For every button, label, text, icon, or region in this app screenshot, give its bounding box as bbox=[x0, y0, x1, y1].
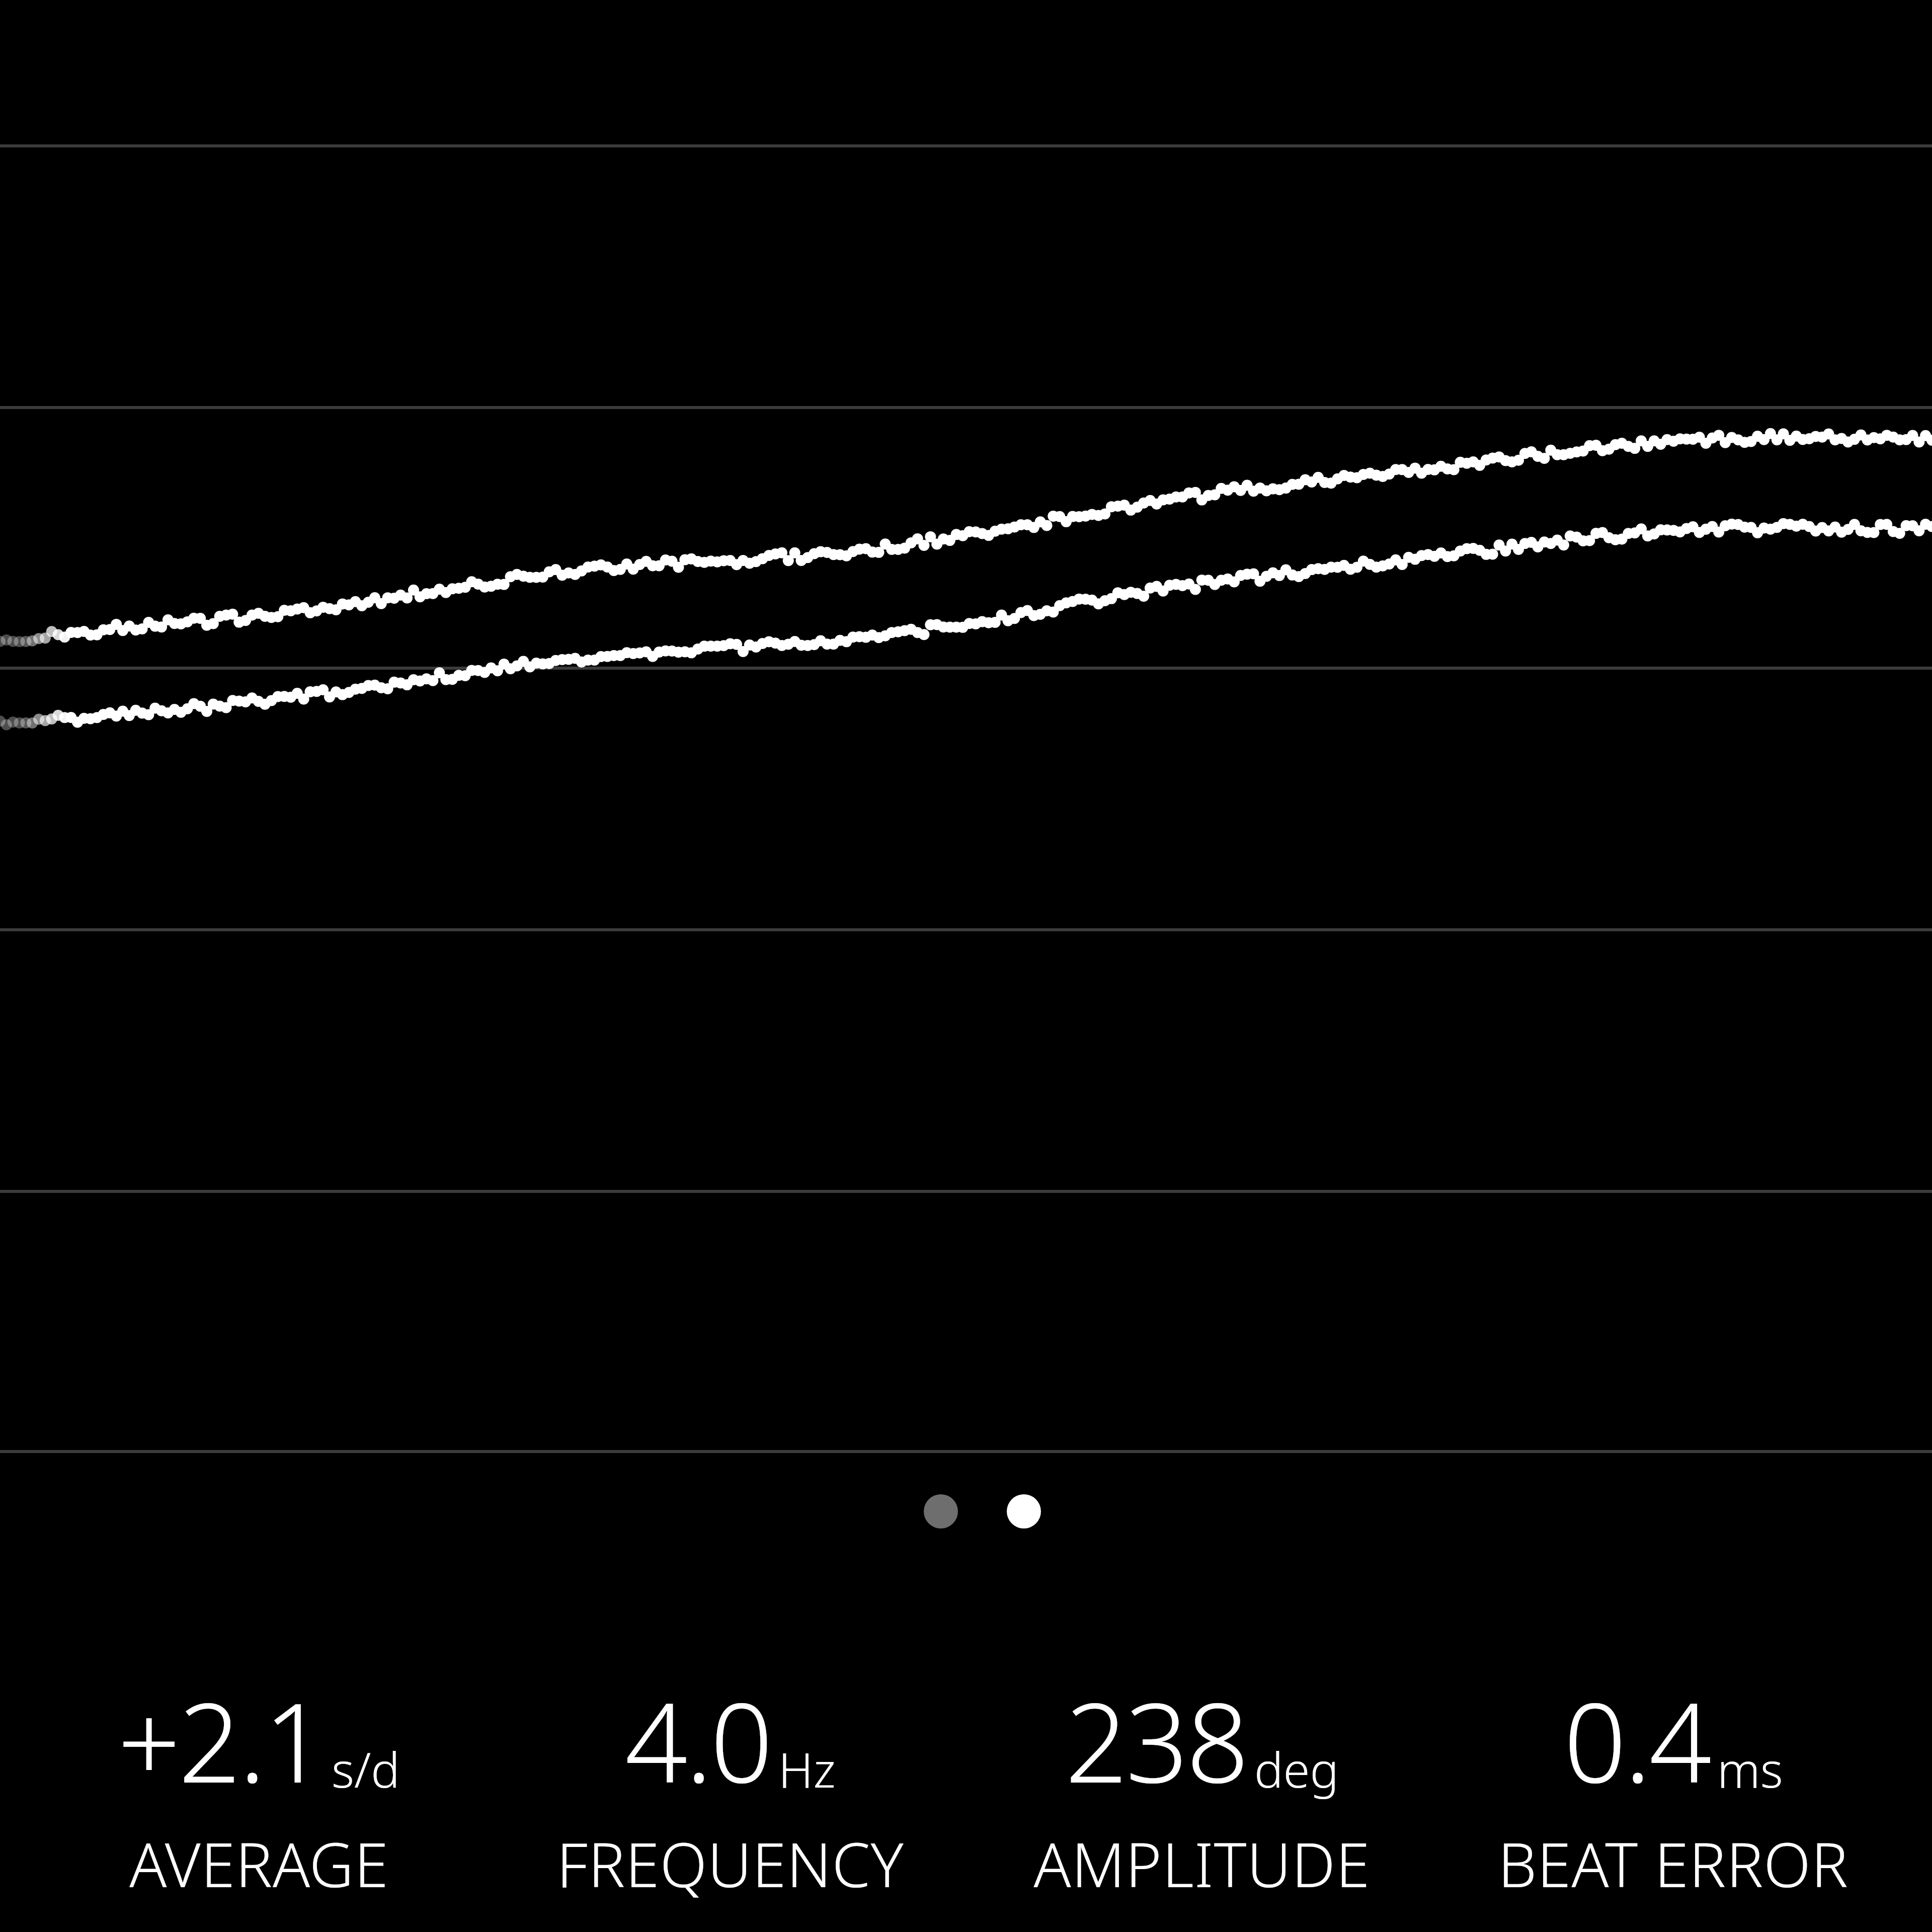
button[interactable]: 238 bbox=[966, 1665, 1437, 1905]
staticText: ms bbox=[1717, 1736, 1783, 1802]
staticText: 0.4 bbox=[1564, 1665, 1710, 1815]
button[interactable]: Page 2 bbox=[1007, 1494, 1041, 1528]
button[interactable]: 0.4 bbox=[1437, 1665, 1909, 1905]
staticText: AVERAGE bbox=[129, 1822, 389, 1905]
button[interactable]: +2.1 bbox=[23, 1665, 495, 1905]
button[interactable]: Page 1 bbox=[924, 1494, 958, 1528]
staticText: 238 bbox=[1065, 1665, 1247, 1815]
staticText: +2.1 bbox=[118, 1665, 325, 1815]
staticText: FREQUENCY bbox=[556, 1822, 904, 1905]
staticText: 4.0 bbox=[625, 1665, 771, 1815]
button[interactable]: 4.0 bbox=[495, 1665, 966, 1905]
staticText: s/d bbox=[332, 1736, 400, 1802]
staticText: deg bbox=[1254, 1736, 1339, 1802]
staticText: Hz bbox=[778, 1736, 836, 1802]
staticText: BEAT ERROR bbox=[1498, 1822, 1848, 1905]
staticText: AMPLITUDE bbox=[1033, 1822, 1371, 1905]
